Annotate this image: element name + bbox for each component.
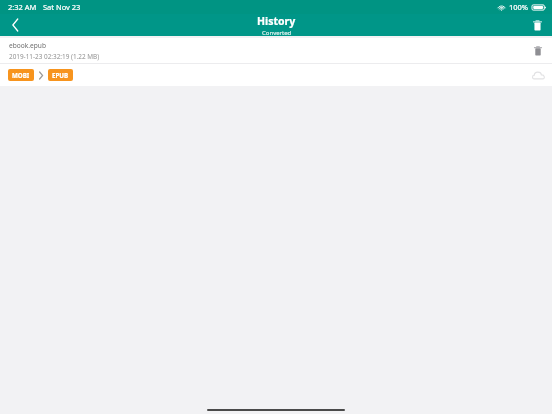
button[interactable]: ebook.epub — [0, 38, 552, 63]
button[interactable]: MOBI — [0, 64, 552, 86]
staticText: 100% — [509, 2, 529, 12]
button[interactable]: EPUB — [48, 69, 73, 81]
staticText: 2:32 AM — [8, 2, 37, 12]
staticText: EPUB — [52, 71, 69, 79]
staticText: MOBI — [12, 71, 30, 79]
staticText: History — [257, 14, 296, 28]
staticText: ebook.epub — [9, 41, 46, 50]
staticText: Converted — [262, 29, 292, 36]
button[interactable]: Delete all history — [522, 14, 552, 36]
button[interactable]: Back — [0, 14, 30, 36]
staticText: 2019-11-23 02:32:19 (1.22 MB) — [9, 52, 100, 61]
button[interactable]: MOBI — [8, 69, 34, 81]
button[interactable]: Cloud upload status — [524, 64, 552, 86]
button[interactable]: Delete item — [524, 38, 552, 63]
staticText: Sat Nov 23 — [43, 2, 81, 12]
